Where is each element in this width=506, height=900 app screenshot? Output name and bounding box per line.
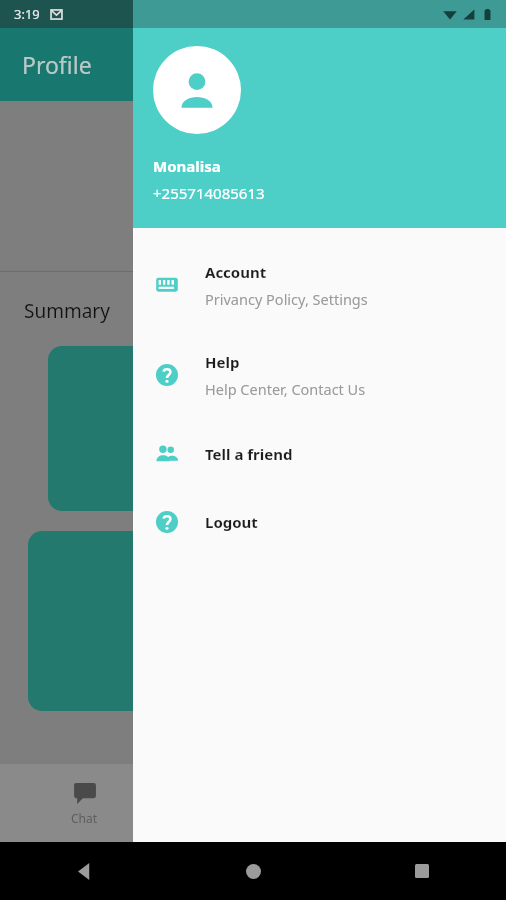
staticText: Summary — [24, 298, 110, 324]
button[interactable]: Account — [133, 240, 506, 330]
staticText: Monalisa — [153, 156, 221, 176]
staticText: Account — [205, 262, 267, 282]
staticText: 3:19 — [14, 5, 40, 23]
staticText: +255714085613 — [153, 183, 265, 203]
staticText: Help — [205, 352, 240, 372]
staticText: Groups — [225, 454, 281, 476]
button[interactable]: Monalisa — [133, 28, 506, 228]
button[interactable]: Back — [67, 854, 101, 888]
button[interactable]: Recent apps — [405, 854, 439, 888]
button[interactable]: 5 — [28, 531, 478, 711]
staticText: Privancy Policy, Settings — [205, 289, 368, 309]
staticText: Tell a friend — [205, 444, 293, 464]
button[interactable]: Chat — [71, 780, 98, 826]
staticText: Help Center, Contact Us — [205, 379, 366, 399]
button[interactable]: 0 — [48, 346, 458, 511]
button[interactable]: Tell a friend — [133, 420, 506, 488]
button[interactable]: Home — [236, 854, 270, 888]
staticText: Profile — [22, 49, 92, 80]
button[interactable]: Logout — [133, 488, 506, 556]
button[interactable]: Help — [133, 330, 506, 420]
staticText: Logout — [205, 512, 258, 532]
staticText: Chat — [71, 810, 98, 826]
